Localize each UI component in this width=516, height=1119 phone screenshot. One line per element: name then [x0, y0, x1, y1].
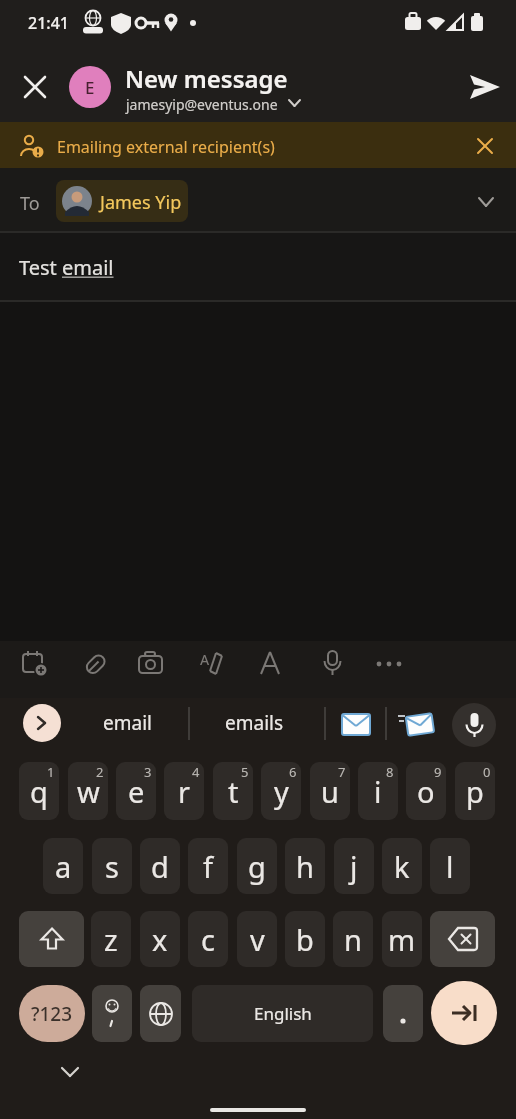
staticText: h [296, 847, 314, 886]
button[interactable] [23, 704, 61, 742]
staticText: c [201, 920, 215, 959]
button[interactable]: n [333, 911, 373, 967]
button[interactable]: o [406, 762, 446, 820]
staticText: a [55, 847, 72, 886]
button[interactable]: f [188, 838, 228, 894]
button[interactable]: q [19, 762, 59, 820]
button[interactable] [466, 70, 506, 104]
staticText: E [85, 76, 95, 99]
staticText: k [394, 847, 410, 886]
button[interactable]: s [92, 838, 132, 894]
staticText: p [466, 772, 484, 811]
staticText: emails [225, 710, 284, 736]
staticText: y [274, 772, 289, 811]
button[interactable] [383, 985, 423, 1042]
staticText: m [388, 920, 416, 959]
button[interactable]: i [358, 762, 398, 820]
staticText: English [254, 1002, 312, 1025]
staticText: o [417, 772, 435, 811]
staticText: 21:41 [28, 12, 69, 34]
staticText: j [350, 847, 358, 886]
button[interactable]: p [455, 762, 495, 820]
staticText: email [103, 710, 152, 736]
staticText: n [344, 920, 362, 959]
button[interactable] [452, 703, 496, 747]
staticText: Test email [19, 254, 114, 281]
staticText: To [20, 191, 40, 216]
button[interactable] [431, 981, 497, 1045]
staticText: r [178, 772, 190, 811]
button[interactable]: r [164, 762, 204, 820]
button[interactable]: emails [212, 698, 297, 748]
staticText: z [104, 920, 118, 959]
button[interactable]: ?123 [19, 985, 85, 1042]
button[interactable]: James Yip [56, 180, 188, 222]
button[interactable] [430, 911, 495, 967]
staticText: x [152, 920, 168, 959]
button[interactable]: m [382, 911, 422, 967]
button[interactable]: z [91, 911, 131, 967]
staticText: t [228, 772, 239, 811]
staticText: 2 [96, 763, 104, 781]
staticText: i [374, 772, 382, 811]
staticText: v [250, 920, 265, 959]
staticText: 9 [434, 763, 442, 781]
button[interactable]: g [237, 838, 277, 894]
button[interactable]: u [310, 762, 350, 820]
staticText: d [151, 847, 169, 886]
staticText: l [446, 847, 454, 886]
staticText: 8 [386, 763, 394, 781]
button[interactable]: y [261, 762, 301, 820]
button[interactable]: l [430, 838, 470, 894]
staticText: 6 [289, 763, 297, 781]
staticText: 5 [241, 763, 249, 781]
staticText: 3 [144, 763, 152, 781]
staticText: A [200, 650, 210, 669]
button[interactable] [18, 70, 52, 104]
staticText: James Yip [100, 190, 182, 215]
button[interactable]: h [285, 838, 325, 894]
staticText: s [105, 847, 119, 886]
staticText: u [321, 772, 339, 811]
staticText: New message [125, 62, 288, 95]
button[interactable]: j [334, 838, 374, 894]
button[interactable] [92, 985, 132, 1042]
staticText: ?123 [31, 1001, 73, 1027]
staticText: 7 [338, 763, 346, 781]
button[interactable]: E [69, 66, 111, 108]
staticText: Emailing external recipient(s) [57, 136, 275, 158]
button[interactable] [19, 911, 84, 967]
button[interactable]: c [188, 911, 228, 967]
button[interactable]: k [382, 838, 422, 894]
staticText: jamesyip@eventus.one [126, 95, 278, 114]
button[interactable]: t [213, 762, 253, 820]
button[interactable]: w [68, 762, 108, 820]
button[interactable]: x [140, 911, 180, 967]
button[interactable] [470, 134, 498, 160]
staticText: 4 [192, 763, 200, 781]
staticText: e [128, 772, 145, 811]
button[interactable]: e [116, 762, 156, 820]
button[interactable] [398, 702, 436, 746]
button[interactable]: a [43, 838, 83, 894]
staticText: b [296, 920, 314, 959]
staticText: 1 [47, 763, 55, 781]
staticText: q [30, 772, 48, 811]
button[interactable]: email [85, 698, 170, 748]
button[interactable]: English [192, 985, 373, 1042]
staticText: 0 [483, 763, 491, 781]
button[interactable] [338, 702, 374, 746]
staticText: g [248, 847, 266, 886]
button[interactable]: d [140, 838, 180, 894]
staticText: w [77, 772, 100, 811]
button[interactable]: v [237, 911, 277, 967]
button[interactable] [140, 985, 181, 1042]
staticText: f [203, 847, 213, 886]
button[interactable]: b [285, 911, 325, 967]
